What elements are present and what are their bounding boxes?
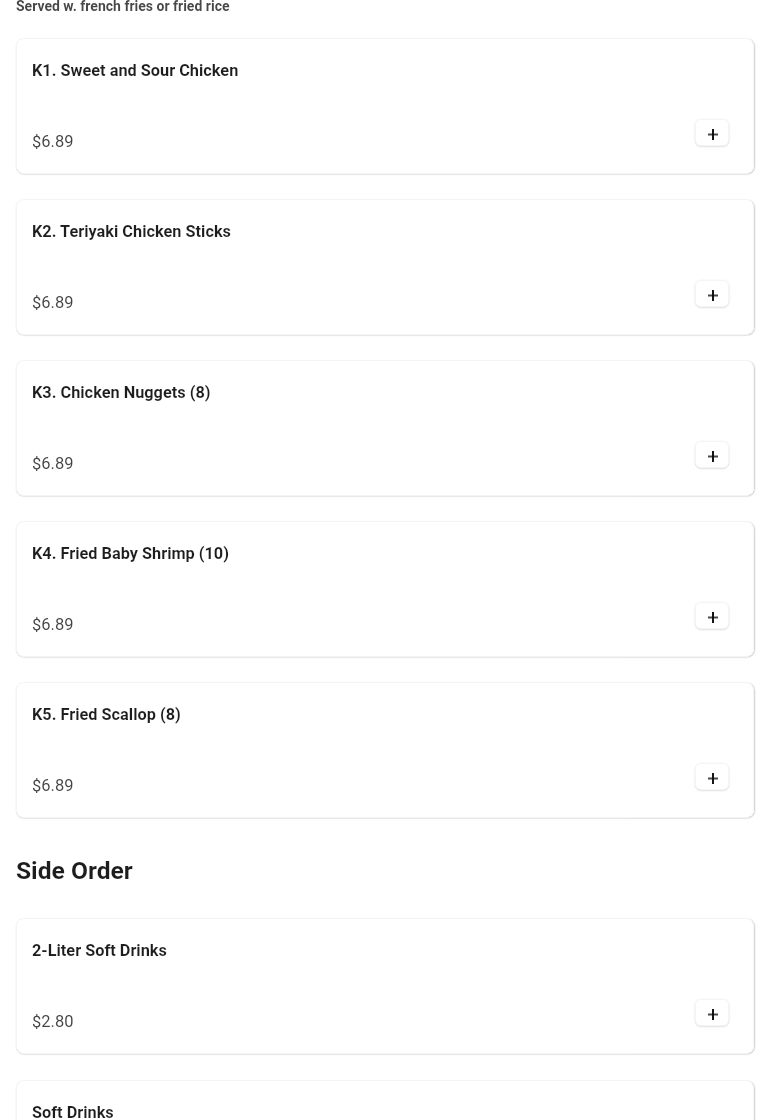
button[interactable]: 2-Liter Soft Drinks <box>16 918 754 1054</box>
button[interactable]: Add item <box>695 999 729 1026</box>
staticText: K2. Teriyaki Chicken Sticks <box>32 222 231 241</box>
button[interactable]: K2. Teriyaki Chicken Sticks <box>16 199 754 335</box>
button[interactable]: Add item <box>695 763 729 790</box>
staticText: $6.89 <box>32 776 74 795</box>
staticText: $6.89 <box>32 293 74 312</box>
staticText: $2.80 <box>32 1012 74 1031</box>
staticText: $6.89 <box>32 132 74 151</box>
staticText: K5. Fried Scallop (8) <box>32 705 181 724</box>
button[interactable]: Soft Drinks <box>16 1080 754 1120</box>
staticText: $6.89 <box>32 615 74 634</box>
staticText: Soft Drinks <box>32 1103 114 1120</box>
button[interactable]: Add item <box>695 441 729 468</box>
button[interactable]: Add item <box>695 119 729 146</box>
staticText: Side Order <box>16 856 133 885</box>
staticText: 2-Liter Soft Drinks <box>32 941 167 960</box>
button[interactable]: Add item <box>695 602 729 629</box>
button[interactable]: K5. Fried Scallop (8) <box>16 682 754 818</box>
staticText: K4. Fried Baby Shrimp (10) <box>32 544 229 563</box>
button[interactable]: K3. Chicken Nuggets (8) <box>16 360 754 496</box>
staticText: K3. Chicken Nuggets (8) <box>32 383 211 402</box>
button[interactable]: K1. Sweet and Sour Chicken <box>16 38 754 174</box>
staticText: $6.89 <box>32 454 74 473</box>
button[interactable]: K4. Fried Baby Shrimp (10) <box>16 521 754 657</box>
staticText: K1. Sweet and Sour Chicken <box>32 61 239 80</box>
button[interactable]: Add item <box>695 280 729 307</box>
staticText: Served w. french fries or fried rice <box>16 0 230 14</box>
